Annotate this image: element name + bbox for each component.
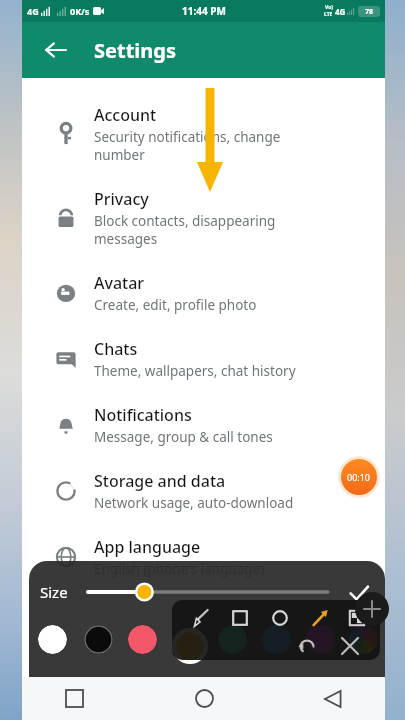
staticText: Message, group & call tones [94,428,273,446]
button[interactable]: circle [268,606,292,630]
button[interactable]: Colour 4 [218,625,247,654]
button[interactable]: Chats [22,326,385,392]
staticText: Avatar [94,272,145,294]
button[interactable]: Account [22,92,385,176]
staticText: Account [94,104,157,126]
button[interactable]: arrow [308,606,332,630]
staticText: 00:10 [347,471,371,483]
staticText: 11:44 PM [182,4,226,18]
button[interactable]: Storage and data [22,458,385,524]
staticText: Theme, wallpapers, chat history [94,362,296,380]
staticText: 78 [365,7,374,17]
button[interactable]: mosaic [345,606,369,630]
button[interactable]: Move toolbar [355,592,389,626]
staticText: 0K/s [70,5,90,17]
button[interactable]: Close [338,634,362,658]
button[interactable]: Back [33,28,77,72]
staticText: Chats [94,338,138,360]
staticText: Size [40,582,68,602]
staticText: LTE [324,11,333,18]
button[interactable]: App language [22,524,385,590]
staticText: Privacy [94,188,149,210]
staticText: 4G [27,5,39,17]
button[interactable]: brush [188,606,212,630]
staticText: Notifications [94,404,192,426]
button[interactable]: square [228,606,252,630]
staticText: Vo) [325,4,333,11]
staticText: Block contacts, disappearing messages [94,212,276,248]
button[interactable]: Done [344,578,374,608]
staticText: 4G [335,6,346,17]
button[interactable]: Colour 5 [262,625,291,654]
button[interactable]: Notifications [22,392,385,458]
button[interactable]: Avatar [22,260,385,326]
staticText: Settings [94,37,176,64]
button[interactable]: Undo [295,634,319,658]
button[interactable]: Colour 6 [306,625,335,654]
button[interactable]: Privacy [22,176,385,260]
button[interactable]: Back [311,677,355,720]
button[interactable]: Colour 7 [349,625,378,654]
staticText: English (phone's language) [94,560,265,578]
staticText: Security notifications, change number [94,128,281,164]
staticText: Storage and data [94,470,226,492]
button[interactable]: Colour 3 [176,632,204,660]
button[interactable]: Recents [52,677,96,720]
staticText: Network usage, auto-download [94,494,294,512]
staticText: Create, edit, profile photo [94,296,257,314]
button[interactable]: Colour 1 [84,625,113,654]
button[interactable]: Home [182,677,226,720]
staticText: App language [94,536,201,558]
button[interactable]: Colour 0 [38,625,67,654]
button[interactable]: Colour 2 [128,625,157,654]
